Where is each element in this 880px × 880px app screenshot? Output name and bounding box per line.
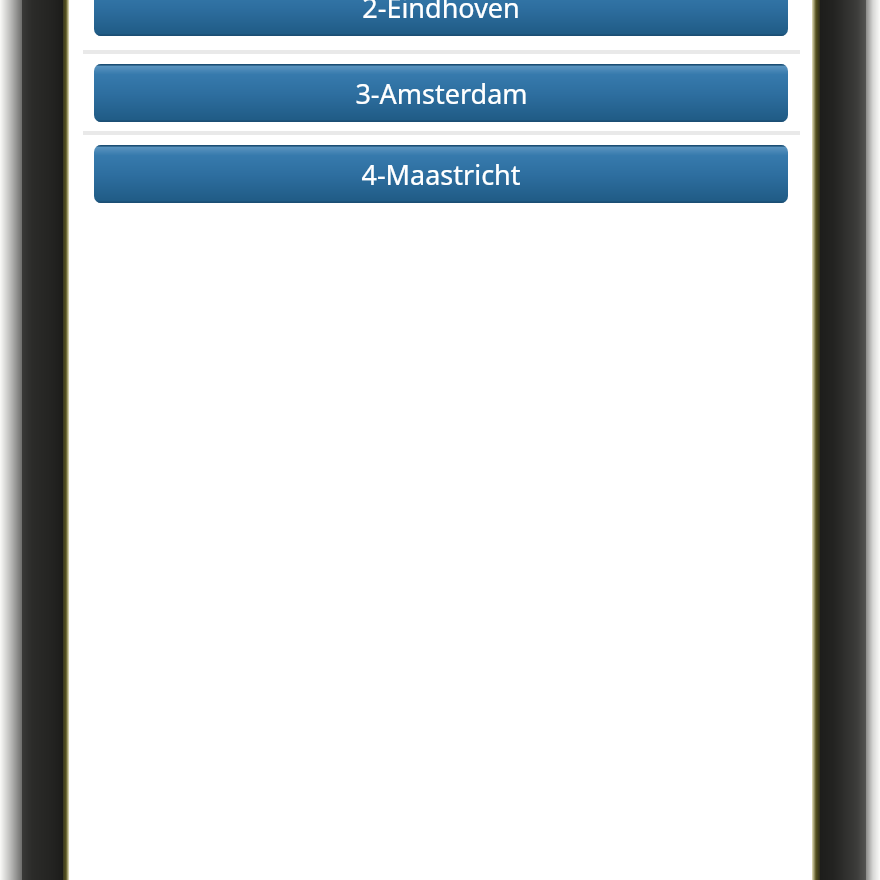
staticText: 2-Eindhoven [362, 0, 520, 26]
button[interactable]: 2-Eindhoven [94, 0, 788, 36]
button[interactable]: 3-Amsterdam [94, 64, 788, 122]
staticText: 3-Amsterdam [355, 75, 528, 112]
button[interactable]: 4-Maastricht [94, 145, 788, 203]
staticText: 4-Maastricht [361, 156, 521, 193]
